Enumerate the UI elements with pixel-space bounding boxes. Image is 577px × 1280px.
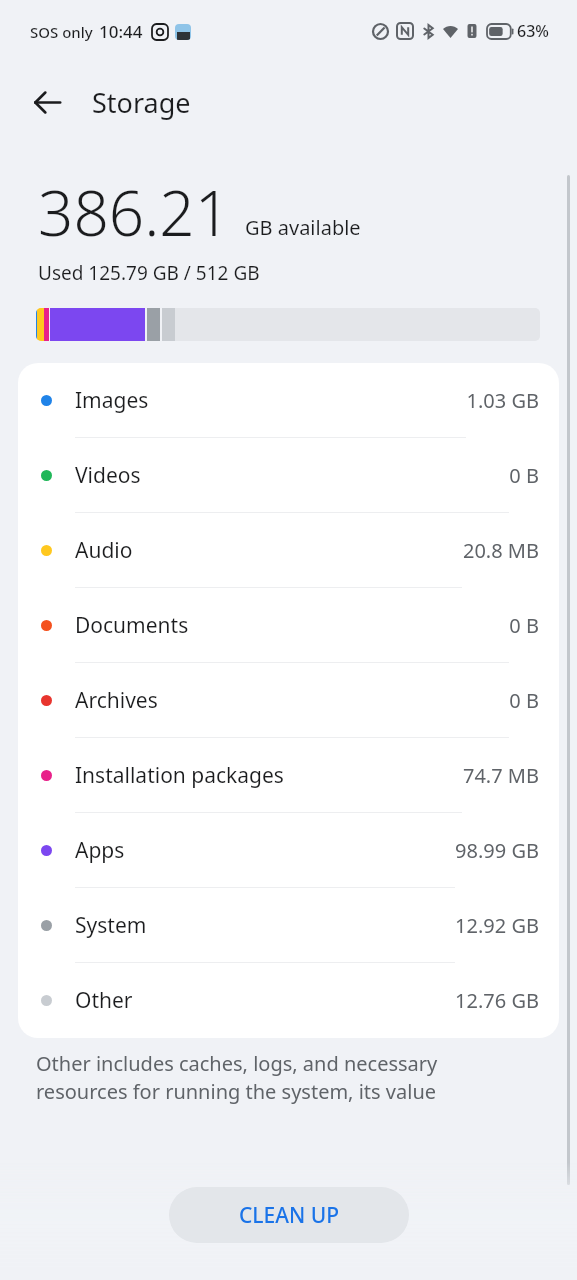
staticText: System	[75, 911, 147, 940]
staticText: 20.8 MB	[462, 537, 539, 564]
staticText: GB available	[245, 214, 361, 241]
button[interactable]: CLEAN UP	[169, 1187, 409, 1243]
staticText: Apps	[75, 836, 125, 865]
staticText: Used 125.79 GB / 512 GB	[38, 260, 260, 286]
staticText: Other includes caches, logs, and necessa…	[36, 1050, 517, 1105]
staticText: Archives	[75, 686, 158, 715]
staticText: SOS only	[30, 22, 93, 42]
button[interactable]: Videos	[18, 438, 559, 513]
staticText: 98.99 GB	[455, 837, 539, 864]
button[interactable]: System	[18, 888, 559, 963]
staticText: 386.21	[38, 170, 231, 254]
staticText: 0 B	[509, 462, 539, 489]
button[interactable]: Other	[18, 963, 559, 1038]
staticText: Installation packages	[75, 761, 284, 790]
staticText: 0 B	[509, 687, 539, 714]
staticText: 0 B	[509, 612, 539, 639]
button[interactable]: Audio	[18, 513, 559, 588]
button[interactable]: Installation packages	[18, 738, 559, 813]
button[interactable]: Archives	[18, 663, 559, 738]
staticText: 12.92 GB	[455, 912, 539, 939]
button[interactable]: Images	[18, 363, 559, 438]
staticText: Videos	[75, 461, 141, 490]
staticText: Documents	[75, 611, 189, 640]
button[interactable]: Apps	[18, 813, 559, 888]
staticText: 12.76 GB	[455, 987, 539, 1014]
staticText: 10:44	[99, 20, 143, 43]
staticText: Images	[75, 386, 149, 415]
staticText: Storage	[92, 84, 191, 121]
staticText: Audio	[75, 536, 133, 565]
button[interactable]: Back	[22, 77, 72, 127]
staticText: Other	[75, 986, 133, 1015]
staticText: CLEAN UP	[239, 1201, 340, 1230]
staticText: 74.7 MB	[462, 762, 539, 789]
button[interactable]: Documents	[18, 588, 559, 663]
staticText: 1.03 GB	[466, 387, 539, 414]
staticText: 63%	[517, 20, 549, 42]
